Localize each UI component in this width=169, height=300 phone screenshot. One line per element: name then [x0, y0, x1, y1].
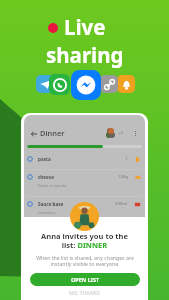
button[interactable]: More options: [131, 129, 140, 138]
button[interactable]: Sauce base: [24, 197, 145, 224]
button[interactable]: pasta: [24, 152, 145, 170]
staticText: OPEN LIST: [71, 276, 100, 283]
staticText: Sauce base: [38, 201, 64, 207]
staticText: NO, THANKS: [69, 290, 100, 297]
staticText: 120g: [118, 174, 128, 180]
staticText: Dinner: [40, 128, 65, 138]
staticText: Edam or gouda: [38, 183, 67, 188]
button[interactable]: cheese: [24, 170, 145, 197]
staticText: Anna invites you to the list: DINNER: [41, 231, 128, 250]
button[interactable]: Share via Messenger: [71, 70, 101, 100]
staticText: 1: [125, 156, 128, 162]
staticText: When the list is shared, any changes are…: [36, 254, 134, 268]
staticText: +2: [118, 130, 123, 136]
button[interactable]: Members: [106, 128, 115, 138]
staticText: Live: [64, 13, 106, 41]
button[interactable]: OPEN LIST: [30, 273, 140, 286]
staticText: sharing: [46, 41, 124, 69]
button[interactable]: Share via Telegram: [36, 75, 54, 93]
button[interactable]: Copy link: [100, 75, 118, 93]
staticText: tomatoes: [38, 210, 56, 215]
button[interactable]: Share via WhatsApp: [49, 74, 70, 95]
button[interactable]: Notify: [117, 75, 135, 93]
staticText: cheese: [38, 174, 54, 180]
staticText: 500ml: [115, 201, 128, 207]
button[interactable]: Back: [29, 129, 38, 138]
staticText: pasta: [38, 156, 51, 162]
